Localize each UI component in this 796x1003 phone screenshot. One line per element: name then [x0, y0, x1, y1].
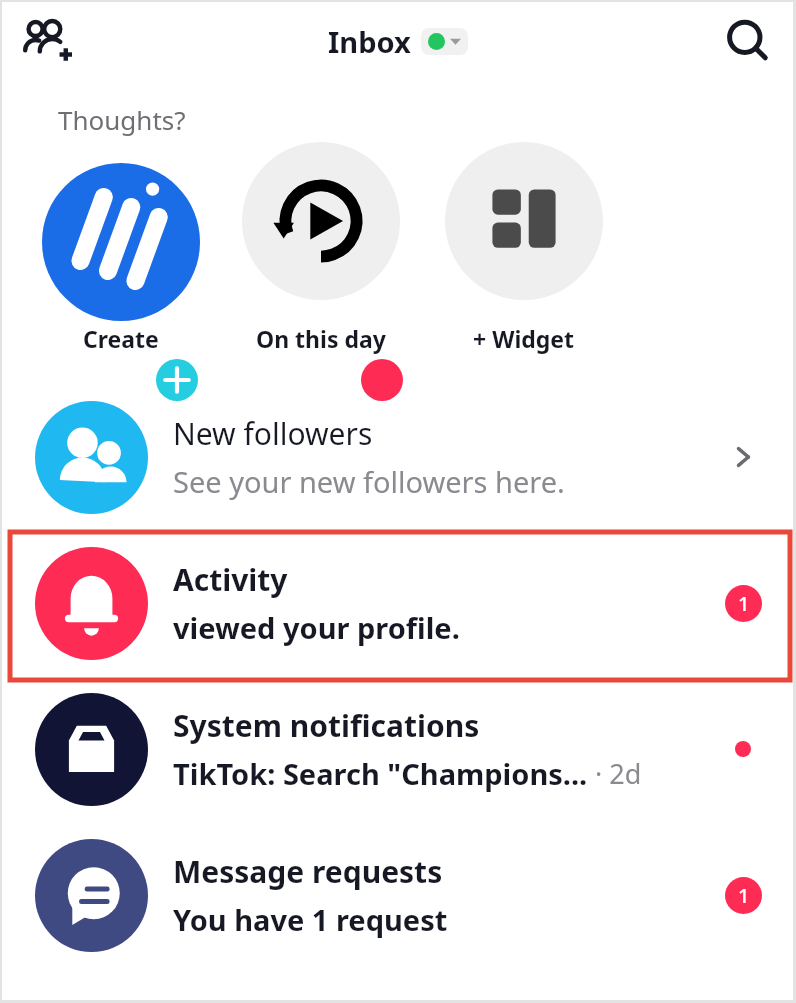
staticText: · 2d [588, 755, 642, 792]
staticText: viewed your profile. [173, 608, 460, 647]
button[interactable]: System notifications [2, 676, 793, 822]
staticText: TikTok: Search "Champions... [173, 754, 588, 793]
staticText: New followers [173, 413, 373, 454]
button[interactable]: Add friends [20, 15, 72, 67]
staticText: + Widget [473, 323, 575, 354]
button[interactable] [242, 142, 400, 300]
staticText: Thoughts? [58, 102, 186, 137]
button[interactable] [445, 142, 603, 300]
button[interactable]: Activity [2, 530, 793, 676]
staticText: Inbox [328, 22, 411, 61]
staticText: Message requests [173, 851, 443, 892]
staticText: 1 [738, 882, 750, 909]
staticText: Activity [173, 559, 288, 600]
button[interactable] [421, 28, 468, 55]
staticText: On this day [256, 323, 386, 354]
button[interactable]: Message requests [2, 822, 793, 968]
button[interactable]: Thoughts? [40, 88, 204, 151]
staticText: System notifications [173, 705, 480, 746]
staticText: You have 1 request [173, 900, 448, 939]
staticText: See your new followers here. [173, 462, 565, 501]
button[interactable]: Search [725, 18, 771, 64]
staticText: 1 [738, 590, 750, 617]
button[interactable]: New followers [2, 384, 793, 530]
button[interactable] [42, 163, 200, 321]
staticText: Create [83, 323, 159, 354]
